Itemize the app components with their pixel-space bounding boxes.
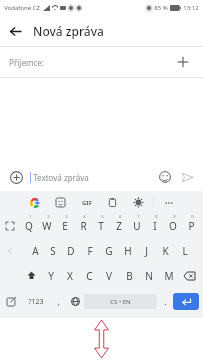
button[interactable]: Attach xyxy=(5,166,27,188)
staticText: N xyxy=(145,269,153,283)
button[interactable]: K xyxy=(156,238,175,263)
button[interactable]: Send xyxy=(176,166,198,188)
button[interactable]: Q xyxy=(20,213,38,238)
staticText: 0 xyxy=(191,214,194,219)
staticText: T xyxy=(98,219,104,233)
staticText: Vodafone CZ xyxy=(4,4,40,12)
staticText: 5 xyxy=(101,214,104,219)
staticText: G xyxy=(105,244,113,258)
button[interactable]: F xyxy=(80,238,99,263)
staticText: 13:12 xyxy=(183,4,199,12)
staticText: S xyxy=(50,244,56,258)
staticText: 2 xyxy=(47,214,50,219)
staticText: E xyxy=(62,219,68,233)
staticText: C xyxy=(86,269,93,283)
staticText: GIF xyxy=(82,199,92,207)
button[interactable]: Google xyxy=(24,192,45,213)
staticText: I xyxy=(153,219,157,233)
staticText: O xyxy=(169,219,177,233)
button[interactable]: Resize keyboard xyxy=(0,213,20,238)
staticText: 8 xyxy=(155,214,158,219)
button[interactable]: B xyxy=(119,263,139,288)
button[interactable]: W xyxy=(38,213,56,238)
button[interactable]: Close keyboard xyxy=(0,238,20,263)
button[interactable]: Clipboard xyxy=(102,192,123,213)
staticText: U xyxy=(133,219,141,233)
staticText: V xyxy=(106,269,112,283)
staticText: 3 xyxy=(65,214,68,219)
button[interactable]: T xyxy=(92,213,110,238)
button[interactable]: E xyxy=(56,213,74,238)
staticText: K xyxy=(162,244,169,258)
button[interactable]: X xyxy=(60,263,79,288)
button[interactable]: Change language xyxy=(66,288,84,315)
button[interactable]: Shift xyxy=(22,263,41,288)
button[interactable]: Z xyxy=(110,213,128,238)
staticText: Z xyxy=(116,219,122,233)
staticText: A xyxy=(32,244,39,258)
staticText: Nová zpráva xyxy=(33,23,104,39)
staticText: 85 % xyxy=(154,4,168,12)
staticText: 4 xyxy=(83,214,86,219)
button[interactable]: Share xyxy=(0,288,22,315)
button[interactable]: Textová zpráva xyxy=(33,172,154,183)
staticText: Q xyxy=(25,219,33,233)
staticText: 1 xyxy=(29,214,32,219)
button[interactable]: Settings xyxy=(128,192,149,213)
button[interactable]: Y xyxy=(41,263,60,288)
button[interactable]: Enter xyxy=(173,293,199,310)
staticText: . xyxy=(164,296,167,307)
staticText: CS • EN xyxy=(110,298,131,306)
staticText: 6 xyxy=(119,214,122,219)
staticText: Příjemce: xyxy=(9,57,44,68)
button[interactable]: M xyxy=(159,263,179,288)
staticText: R xyxy=(80,219,87,233)
staticText: F xyxy=(87,244,93,258)
staticText: X xyxy=(67,269,73,283)
staticText: M xyxy=(164,269,174,283)
staticText: W xyxy=(42,219,52,233)
button[interactable]: . xyxy=(157,288,173,315)
button[interactable]: Emoji xyxy=(154,166,176,188)
staticText: L xyxy=(182,244,188,258)
button[interactable]: Add recipient xyxy=(172,51,194,73)
button[interactable]: P xyxy=(182,213,200,238)
staticText: , xyxy=(57,296,60,307)
button[interactable]: , xyxy=(50,288,66,315)
button[interactable]: U xyxy=(128,213,146,238)
button[interactable]: C xyxy=(79,263,99,288)
button[interactable]: ?123 xyxy=(22,288,50,315)
button[interactable]: I xyxy=(146,213,164,238)
button[interactable]: N xyxy=(139,263,159,288)
button[interactable]: A xyxy=(26,238,44,263)
staticText: H xyxy=(124,244,132,258)
button[interactable]: Back xyxy=(0,16,30,46)
button[interactable]: G xyxy=(99,238,118,263)
button[interactable]: CS • EN xyxy=(84,294,157,309)
staticText: Textová zpráva xyxy=(33,172,89,183)
button[interactable]: Stickers xyxy=(50,192,71,213)
button[interactable]: Backspace xyxy=(179,263,199,288)
button[interactable]: H xyxy=(118,238,137,263)
button[interactable]: V xyxy=(99,263,119,288)
staticText: Y xyxy=(48,269,54,283)
button[interactable]: More xyxy=(158,192,179,213)
button[interactable]: R xyxy=(74,213,92,238)
button[interactable]: D xyxy=(62,238,80,263)
button[interactable]: J xyxy=(137,238,156,263)
button[interactable]: O xyxy=(164,213,182,238)
staticText: 9 xyxy=(173,214,176,219)
staticText: B xyxy=(126,269,133,283)
button[interactable]: L xyxy=(175,238,194,263)
staticText: P xyxy=(188,219,195,233)
button[interactable]: GIF xyxy=(76,192,97,213)
button[interactable]: S xyxy=(44,238,62,263)
staticText: D xyxy=(67,244,75,258)
staticText: ?123 xyxy=(28,297,44,307)
staticText: J xyxy=(145,244,148,258)
staticText: 7 xyxy=(137,214,140,219)
